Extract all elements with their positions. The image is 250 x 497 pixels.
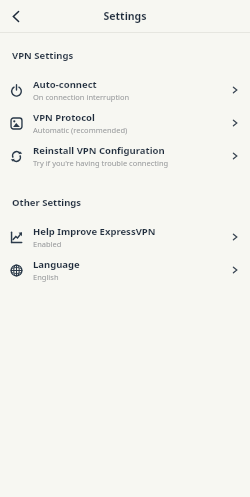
staticText: Help Improve ExpressVPN bbox=[33, 225, 156, 238]
button[interactable]: VPN Protocol bbox=[0, 107, 250, 139]
staticText: VPN Settings bbox=[12, 49, 74, 62]
button[interactable]: Language bbox=[0, 254, 250, 286]
staticText: Other Settings bbox=[12, 196, 82, 209]
staticText: Reinstall VPN Configuration bbox=[33, 144, 165, 157]
button[interactable]: Reinstall VPN Configuration bbox=[0, 140, 250, 172]
staticText: Language bbox=[33, 258, 80, 271]
staticText: Auto-connect bbox=[33, 78, 97, 91]
staticText: On connection interruption bbox=[33, 92, 130, 102]
staticText: VPN Protocol bbox=[33, 111, 95, 124]
staticText: Automatic (recommended) bbox=[33, 125, 128, 135]
staticText: Enabled bbox=[33, 239, 62, 249]
button[interactable]: Help Improve ExpressVPN bbox=[0, 221, 250, 253]
staticText: English bbox=[33, 272, 59, 282]
button[interactable]: Auto-connect bbox=[0, 74, 250, 106]
staticText: Settings bbox=[103, 9, 147, 23]
button[interactable]: Back bbox=[0, 0, 32, 32]
staticText: Try if you're having trouble connecting bbox=[33, 158, 169, 168]
